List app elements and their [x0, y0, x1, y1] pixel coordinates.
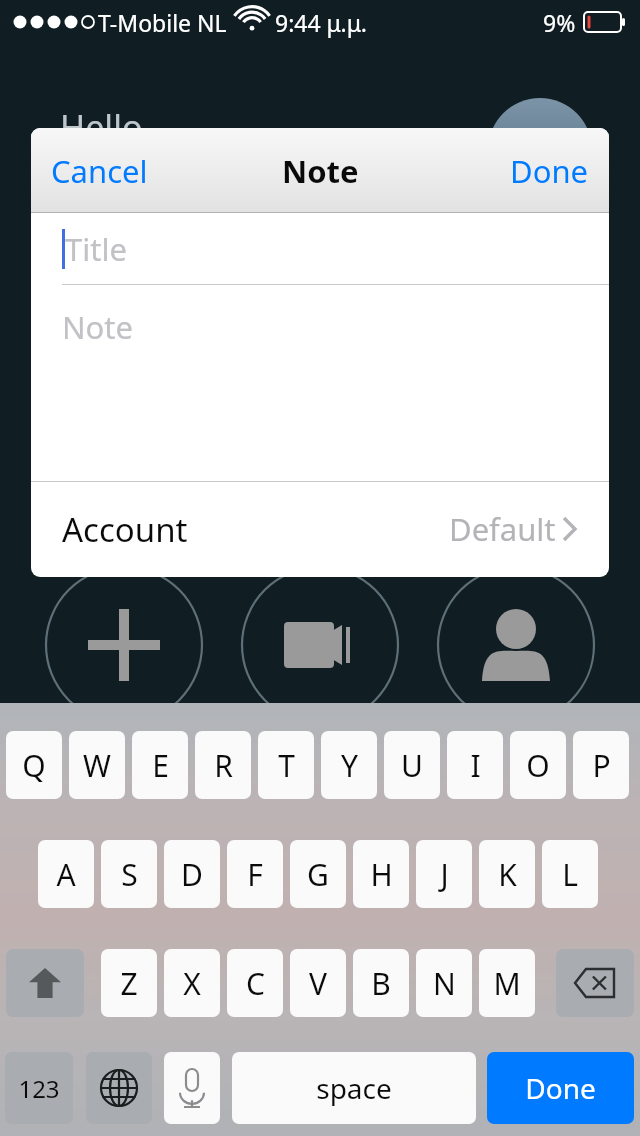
button[interactable]: U — [384, 731, 440, 799]
button[interactable]: Q — [6, 731, 62, 799]
staticText: F — [247, 854, 263, 895]
button[interactable]: D — [164, 840, 220, 908]
staticText: W — [83, 745, 111, 786]
staticText: J — [440, 854, 449, 895]
button[interactable]: S — [101, 840, 157, 908]
staticText: L — [562, 854, 578, 895]
staticText: R — [214, 745, 233, 786]
staticText: space — [316, 1069, 392, 1107]
staticText: T — [278, 745, 295, 786]
button[interactable]: Done — [487, 1052, 634, 1124]
staticText: B — [371, 963, 391, 1004]
button[interactable]: Y — [321, 731, 377, 799]
button[interactable]: Switch keyboard — [86, 1052, 152, 1124]
button[interactable]: H — [353, 840, 409, 908]
staticText: Note — [62, 306, 133, 348]
button[interactable]: I — [447, 731, 503, 799]
staticText: Done — [510, 150, 589, 192]
button[interactable]: A — [38, 840, 94, 908]
button[interactable]: P — [573, 731, 629, 799]
button[interactable]: Account — [31, 482, 609, 576]
button[interactable]: T — [258, 731, 314, 799]
button[interactable]: Z — [101, 949, 157, 1017]
staticText: N — [433, 963, 456, 1004]
staticText: D — [181, 854, 203, 895]
staticText: H — [370, 854, 393, 895]
button[interactable]: Dictate — [164, 1052, 220, 1124]
button[interactable]: F — [227, 840, 283, 908]
staticText: S — [121, 854, 138, 895]
button[interactable]: J — [416, 840, 472, 908]
staticText: Hello — [60, 104, 143, 150]
button[interactable]: N — [416, 949, 472, 1017]
staticText: P — [592, 745, 611, 786]
staticText: G — [307, 854, 329, 895]
button[interactable]: Cancel — [41, 142, 158, 200]
button[interactable]: C — [227, 949, 283, 1017]
staticText: O — [526, 745, 550, 786]
button[interactable]: L — [542, 840, 598, 908]
button[interactable]: Done — [500, 142, 599, 200]
button[interactable]: O — [510, 731, 566, 799]
staticText: Title — [65, 228, 127, 270]
staticText: Default — [449, 508, 556, 550]
staticText: E — [152, 745, 169, 786]
staticText: Note — [282, 150, 359, 192]
staticText: Done — [525, 1069, 596, 1107]
staticText: Cancel — [51, 150, 148, 192]
staticText: T-Mobile NL — [98, 7, 227, 38]
button[interactable]: Title — [31, 213, 609, 285]
staticText: 123 — [18, 1072, 60, 1105]
button[interactable]: E — [132, 731, 188, 799]
staticText: M — [493, 963, 521, 1004]
button[interactable]: space — [232, 1052, 476, 1124]
button[interactable]: W — [69, 731, 125, 799]
staticText: 9:44 μ.μ. — [275, 7, 367, 38]
button[interactable]: G — [290, 840, 346, 908]
staticText: Q — [22, 745, 46, 786]
button[interactable]: V — [290, 949, 346, 1017]
staticText: K — [498, 854, 517, 895]
staticText: X — [183, 963, 201, 1004]
staticText: Account — [62, 507, 188, 552]
button[interactable]: K — [479, 840, 535, 908]
staticText: 9% — [543, 7, 576, 38]
button[interactable]: X — [164, 949, 220, 1017]
button[interactable]: Shift — [6, 949, 84, 1017]
staticText: A — [56, 854, 76, 895]
staticText: V — [309, 963, 327, 1004]
button[interactable]: B — [353, 949, 409, 1017]
staticText: C — [246, 963, 265, 1004]
staticText: Y — [341, 745, 358, 786]
button[interactable]: M — [479, 949, 535, 1017]
button[interactable]: 123 — [5, 1052, 73, 1124]
button[interactable]: Note — [31, 285, 609, 482]
staticText: U — [401, 745, 423, 786]
staticText: Z — [120, 963, 138, 1004]
staticText: I — [470, 745, 481, 786]
button[interactable]: Backspace — [556, 949, 634, 1017]
button[interactable]: R — [195, 731, 251, 799]
